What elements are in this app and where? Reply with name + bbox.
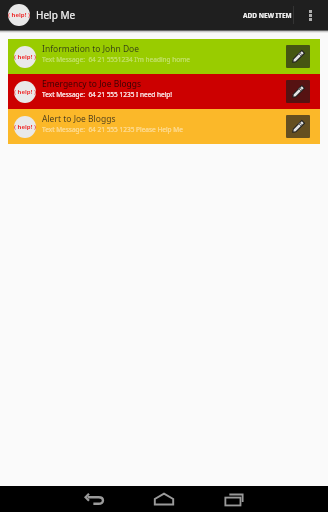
- button[interactable]: ( help! ): [8, 109, 320, 144]
- staticText: Emergency to Joe Bloggs: [42, 78, 142, 90]
- staticText: Alert to Joe Bloggs: [42, 113, 116, 125]
- staticText: ADD NEW ITEM: [243, 11, 292, 20]
- staticText: Information to John Doe: [42, 43, 140, 55]
- staticText: ( help! ): [14, 88, 36, 96]
- button[interactable]: Home: [129, 486, 199, 512]
- staticText: Text Message: 64 21 555 1235 I need help…: [42, 90, 173, 99]
- button[interactable]: ( help! ): [8, 74, 320, 109]
- staticText: Text Message: 64 21 555 1235 Please Help…: [42, 125, 183, 134]
- staticText: ( help! ): [8, 11, 30, 19]
- button[interactable]: Edit: [286, 45, 310, 68]
- button[interactable]: Recents: [199, 486, 269, 512]
- staticText: Help Me: [36, 8, 76, 22]
- staticText: ( help! ): [14, 53, 36, 61]
- button[interactable]: ADD NEW ITEM: [237, 0, 298, 30]
- staticText: ( help! ): [14, 123, 36, 131]
- button[interactable]: Back: [59, 486, 129, 512]
- staticText: Text Message: 64 21 5551234 I'm heading …: [42, 55, 190, 64]
- button[interactable]: More options: [301, 0, 319, 30]
- button[interactable]: ( help! ): [8, 39, 320, 74]
- button[interactable]: Edit: [286, 80, 310, 103]
- button[interactable]: Edit: [286, 115, 310, 138]
